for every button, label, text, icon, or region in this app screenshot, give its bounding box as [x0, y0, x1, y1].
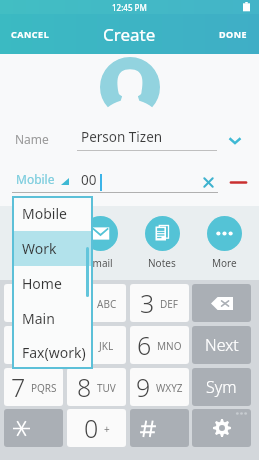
staticText: 1	[26, 286, 41, 320]
staticText: Name	[15, 131, 49, 147]
button[interactable]: More	[198, 216, 250, 270]
staticText: More	[212, 256, 237, 270]
button[interactable]: 7	[4, 368, 63, 406]
staticText: WXYZ	[156, 381, 183, 395]
staticText: +	[104, 422, 110, 436]
button[interactable]: 6	[130, 326, 189, 364]
staticText: CANCEL	[11, 28, 50, 40]
button[interactable]: 0	[67, 409, 126, 447]
staticText: Fax(work)	[22, 343, 86, 362]
staticText: Mobile	[22, 204, 67, 223]
staticText: Next	[205, 334, 239, 356]
button[interactable]: Clear number	[198, 172, 219, 193]
staticText: DONE	[219, 28, 248, 40]
staticText: 7	[11, 370, 26, 404]
button[interactable]	[4, 409, 63, 447]
staticText: Contact	[20, 256, 57, 270]
button[interactable]: Sym	[192, 368, 251, 406]
staticText: 12:45 PM	[112, 2, 147, 13]
staticText: PQRS	[31, 381, 57, 395]
staticText: 8	[77, 370, 92, 404]
staticText: Create	[103, 23, 156, 46]
button[interactable]: 8	[67, 368, 126, 406]
staticText: Email	[87, 256, 113, 270]
button[interactable]: Expand name fields	[224, 129, 246, 151]
staticText: 4	[14, 328, 29, 362]
button[interactable]: Settings	[192, 409, 251, 447]
staticText: 5	[79, 328, 94, 362]
button[interactable]: Contact	[12, 216, 64, 270]
button[interactable]: 3	[130, 284, 189, 322]
button[interactable]: 5	[67, 326, 126, 364]
staticText: Work	[22, 239, 57, 258]
staticText: Main	[22, 309, 55, 328]
button[interactable]: Mobile	[12, 196, 93, 231]
button[interactable]: 9	[130, 368, 189, 406]
staticText: 3	[140, 286, 155, 320]
staticText: DEF	[160, 297, 179, 311]
button[interactable]: 2	[67, 284, 126, 322]
button[interactable]	[130, 409, 189, 447]
button[interactable]: Email	[74, 216, 126, 270]
button[interactable]: CANCEL	[0, 17, 61, 51]
staticText: Sym	[206, 376, 237, 398]
staticText: 6	[137, 328, 152, 362]
staticText: Notes	[148, 256, 176, 270]
staticText: MNO	[157, 339, 182, 353]
staticText: 00	[81, 171, 97, 189]
staticText: ABC	[97, 297, 117, 311]
staticText: Mobile	[16, 171, 55, 187]
button[interactable]: Delete	[192, 284, 251, 322]
staticText: GHI	[34, 339, 53, 353]
button[interactable]: Remove phone field	[228, 172, 249, 193]
staticText: 0	[84, 411, 99, 445]
button[interactable]: Fax(work)	[12, 336, 93, 369]
staticText: Home	[22, 274, 62, 293]
staticText: JKL	[99, 339, 114, 353]
button[interactable]: Notes	[136, 216, 188, 270]
staticText: TUV	[97, 381, 116, 395]
button[interactable]: 4	[4, 326, 63, 364]
staticText: 2	[77, 286, 92, 320]
button[interactable]: Mobile	[12, 166, 74, 192]
button[interactable]: Next	[192, 326, 251, 364]
staticText: 9	[136, 370, 151, 404]
button[interactable]: Home	[12, 266, 93, 301]
button[interactable]: 1	[4, 284, 63, 322]
button[interactable]: Contact photo	[100, 57, 160, 117]
button[interactable]: DONE	[208, 17, 259, 51]
button[interactable]: Main	[12, 301, 93, 336]
staticText: Person Tizen	[81, 128, 163, 146]
button[interactable]: Work	[12, 231, 93, 266]
